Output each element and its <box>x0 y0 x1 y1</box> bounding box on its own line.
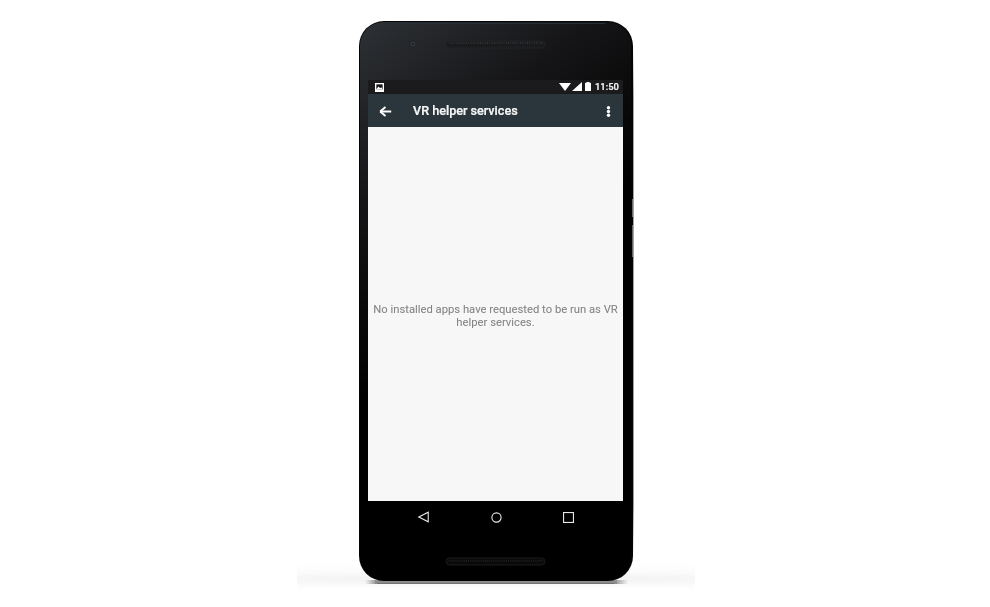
button[interactable]: Navigate up <box>373 99 397 123</box>
button[interactable]: More options <box>596 99 620 123</box>
button[interactable]: Recent apps <box>556 505 580 529</box>
staticText: VR helper services <box>413 103 518 118</box>
staticText: 11:50 <box>595 81 619 92</box>
button[interactable]: Home <box>484 505 508 529</box>
button[interactable]: Back <box>411 505 435 529</box>
staticText: No installed apps have requested to be r… <box>368 303 623 328</box>
